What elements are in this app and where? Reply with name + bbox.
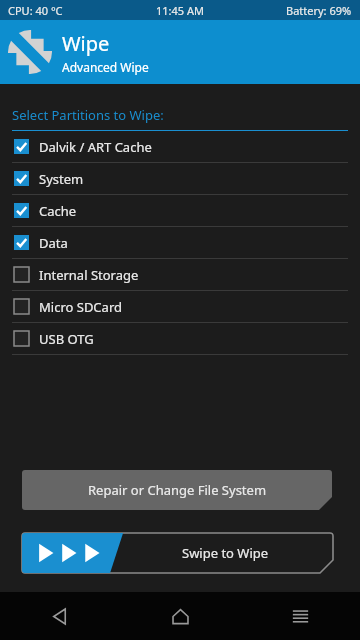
- staticText: Repair or Change File System: [88, 481, 267, 499]
- staticText: Dalvik / ART Cache: [39, 138, 152, 156]
- staticText: Swipe to Wipe: [182, 544, 269, 562]
- staticText: Battery: 69%: [286, 3, 352, 18]
- staticText: Micro SDCard: [39, 298, 122, 316]
- button[interactable]: Data: [0, 227, 360, 259]
- button[interactable]: Repair or Change File System: [22, 470, 332, 510]
- button[interactable]: System: [0, 163, 360, 195]
- button[interactable]: USB OTG: [0, 323, 360, 355]
- staticText: CPU: 40 °C: [8, 3, 63, 18]
- staticText: Cache: [39, 202, 77, 220]
- button[interactable]: Back: [0, 592, 120, 640]
- staticText: USB OTG: [39, 330, 94, 348]
- staticText: Data: [39, 234, 68, 252]
- staticText: System: [39, 170, 84, 188]
- button[interactable]: Home: [120, 592, 240, 640]
- button[interactable]: Micro SDCard: [0, 291, 360, 323]
- button[interactable]: Recent apps: [240, 592, 360, 640]
- staticText: Internal Storage: [39, 266, 139, 284]
- button[interactable]: Swipe to Wipe: [22, 533, 333, 573]
- staticText: Select Partitions to Wipe:: [12, 106, 164, 124]
- button[interactable]: Dalvik / ART Cache: [0, 131, 360, 163]
- staticText: Advanced Wipe: [62, 59, 149, 75]
- button[interactable]: Internal Storage: [0, 259, 360, 291]
- button[interactable]: Cache: [0, 195, 360, 227]
- staticText: Wipe: [62, 30, 110, 57]
- staticText: 11:45 AM: [156, 3, 204, 18]
